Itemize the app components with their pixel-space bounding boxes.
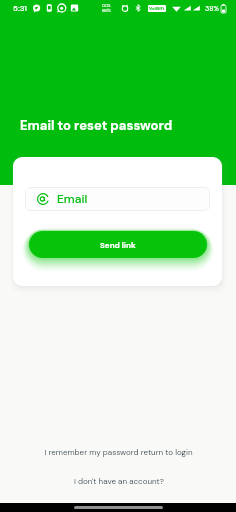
other: Home [74, 506, 163, 509]
staticText: I remember my password return to login [44, 447, 193, 457]
staticText: I don't have an account? [74, 476, 164, 486]
button[interactable]: Email [25, 187, 210, 211]
staticText: VoWiFi [149, 6, 165, 12]
button[interactable]: Send link [29, 231, 207, 258]
button[interactable]: I don't have an account? [64, 473, 174, 489]
staticText: Send link [100, 240, 136, 250]
staticText: KB/S [102, 8, 111, 13]
staticText: 0.05 [102, 3, 111, 8]
staticText: Email to reset password [20, 117, 173, 134]
button[interactable]: I remember my password return to login [34, 444, 203, 460]
staticText: Email [57, 191, 88, 207]
staticText: 5:31 [13, 3, 27, 13]
staticText: 38% [205, 4, 219, 13]
other: Email [37, 193, 49, 205]
